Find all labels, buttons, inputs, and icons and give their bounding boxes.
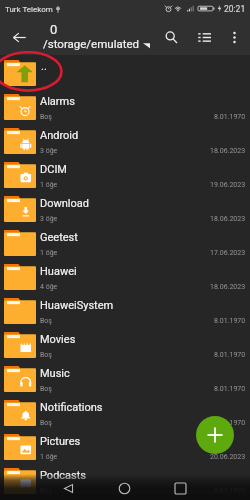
button[interactable]: Podcasts [0,464,250,498]
staticText: Download [40,197,89,210]
button[interactable]: More options [222,25,246,49]
button[interactable]: HuaweiSystem [0,294,250,328]
staticText: 20.06.2023 [210,453,246,461]
staticText: 1 öğe [40,453,58,461]
button[interactable]: Recents [169,477,192,500]
staticText: Boş [40,419,52,427]
button[interactable]: Home [113,477,136,500]
staticText: /storage/emulated [43,37,140,50]
staticText: Alarms [40,95,75,108]
staticText: Boş [40,113,52,121]
button[interactable]: Search [159,25,183,49]
button[interactable]: Download [0,192,250,226]
staticText: Turk Telekom [5,5,53,14]
staticText: 8.01.1970 [214,351,246,359]
button[interactable]: View list [192,25,216,49]
staticText: Pictures [40,435,81,448]
staticText: Geetest [40,231,78,244]
staticText: .. [41,60,47,73]
button[interactable]: DCIM [0,158,250,192]
staticText: Movies [40,333,76,346]
staticText: HuaweiSystem [40,299,114,312]
button[interactable]: Geetest [0,226,250,260]
staticText: Music [40,367,70,380]
staticText: 3 öğe [40,215,58,223]
staticText: Android [40,129,79,142]
staticText: 1 öğe [40,249,58,257]
staticText: Huawei [40,265,77,278]
button[interactable]: Android [0,124,250,158]
staticText: 8.01.1970 [214,113,246,121]
staticText: 3 öğe [40,147,58,155]
staticText: 8.01.1970 [214,419,246,427]
button[interactable]: Alarms [0,90,250,124]
button[interactable]: .. [0,56,250,90]
staticText: Boş [40,351,52,359]
button[interactable]: Music [0,362,250,396]
staticText: 18.06.2023 [210,283,246,291]
staticText: 18.06.2023 [210,215,246,223]
button[interactable]: Movies [0,328,250,362]
button[interactable]: Back [7,25,31,49]
staticText: 0 [50,22,58,37]
staticText: 20:21 [224,4,246,14]
staticText: Boş [40,385,52,393]
staticText: 19.06.2023 [210,181,246,189]
staticText: 1 öğe [40,181,58,189]
button[interactable]: Notifications [0,396,250,430]
staticText: 17.06.2023 [210,249,246,257]
staticText: 4 öğe [40,283,58,291]
button[interactable]: Huawei [0,260,250,294]
button[interactable]: Add [196,416,234,454]
button[interactable]: Back [57,477,80,500]
button[interactable]: Pictures [0,430,250,464]
staticText: 8.01.1970 [214,385,246,393]
staticText: Boş [40,317,52,325]
staticText: 8.01.1970 [214,317,246,325]
staticText: 18.06.2023 [210,147,246,155]
staticText: Podcasts [40,469,87,482]
staticText: Notifications [40,401,103,414]
staticText: DCIM [40,163,67,176]
